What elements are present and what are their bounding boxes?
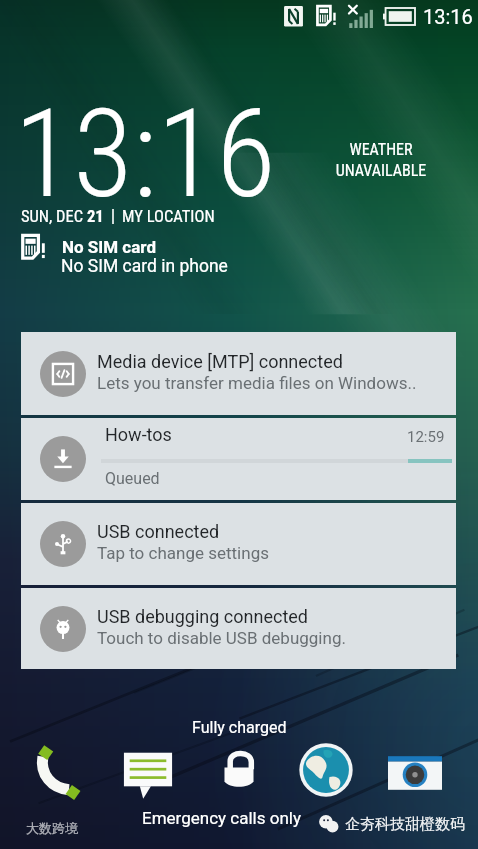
staticText: WEATHER UNAVAILABLE bbox=[333, 140, 429, 180]
staticText: Lets you transfer media files on Windows… bbox=[97, 373, 417, 393]
staticText: 大数跨境 bbox=[26, 820, 78, 836]
staticText: How-tos bbox=[105, 424, 172, 445]
staticText: Media device [MTP] connected bbox=[97, 351, 343, 372]
button[interactable]: How-tos bbox=[21, 418, 456, 500]
button[interactable]: Camera bbox=[382, 740, 448, 806]
button[interactable]: Phone bbox=[28, 740, 92, 804]
staticText: 13:16 bbox=[423, 5, 473, 28]
button[interactable]: Messages bbox=[116, 742, 180, 806]
staticText: No SIM card in phone bbox=[61, 256, 228, 277]
staticText: USB debugging connected bbox=[97, 606, 308, 627]
staticText: 12:59 bbox=[407, 428, 445, 446]
staticText: SUN, DEC bbox=[21, 207, 87, 226]
staticText: USB connected bbox=[97, 521, 220, 542]
staticText: Tap to change settings bbox=[97, 543, 269, 563]
button[interactable]: Browser bbox=[294, 738, 358, 802]
staticText: MY LOCATION bbox=[122, 207, 215, 226]
staticText: 21 bbox=[87, 207, 104, 226]
staticText: Fully charged bbox=[192, 718, 287, 737]
button[interactable]: Media device [MTP] connected bbox=[21, 332, 456, 415]
button[interactable]: USB connected bbox=[21, 503, 456, 585]
staticText: No SIM card bbox=[62, 237, 156, 257]
staticText: 13:16 bbox=[14, 83, 276, 226]
button[interactable]: Unlock bbox=[208, 740, 270, 802]
staticText: 企夯科技甜橙数码 bbox=[345, 815, 465, 834]
staticText: Queued bbox=[105, 469, 160, 488]
staticText: Touch to disable USB debugging. bbox=[97, 628, 346, 648]
staticText: Emergency calls only bbox=[142, 808, 301, 828]
button[interactable]: USB debugging connected bbox=[21, 588, 456, 669]
